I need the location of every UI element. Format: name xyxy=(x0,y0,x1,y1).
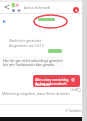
staticText: Senden xyxy=(69,108,82,113)
staticText: bei mir funktioniert das gerade xyxy=(3,62,55,67)
button[interactable]: Senden xyxy=(64,106,82,114)
staticText: Mitteilung eingeben, dann Enter drücken xyxy=(2,91,70,96)
staticText: du bei automatisch gesendet xyxy=(35,81,80,87)
staticText: Nachricht gesendet xyxy=(9,38,42,43)
staticText: Anna Schmidt xyxy=(24,5,51,10)
button[interactable]: Alles okay vorsichtig 😊 Viel mehr xyxy=(33,75,80,87)
button[interactable]: Call xyxy=(73,7,79,13)
staticText: Angesehen um 14:12 xyxy=(9,43,44,48)
staticText: Alles okay vorsichtig 😊 Viel mehr xyxy=(35,77,80,87)
staticText: Hat ich gar nicht unbedingt gemeint xyxy=(3,58,63,63)
button[interactable]: Share xyxy=(3,3,11,11)
staticText: 14:40 xyxy=(70,88,78,92)
